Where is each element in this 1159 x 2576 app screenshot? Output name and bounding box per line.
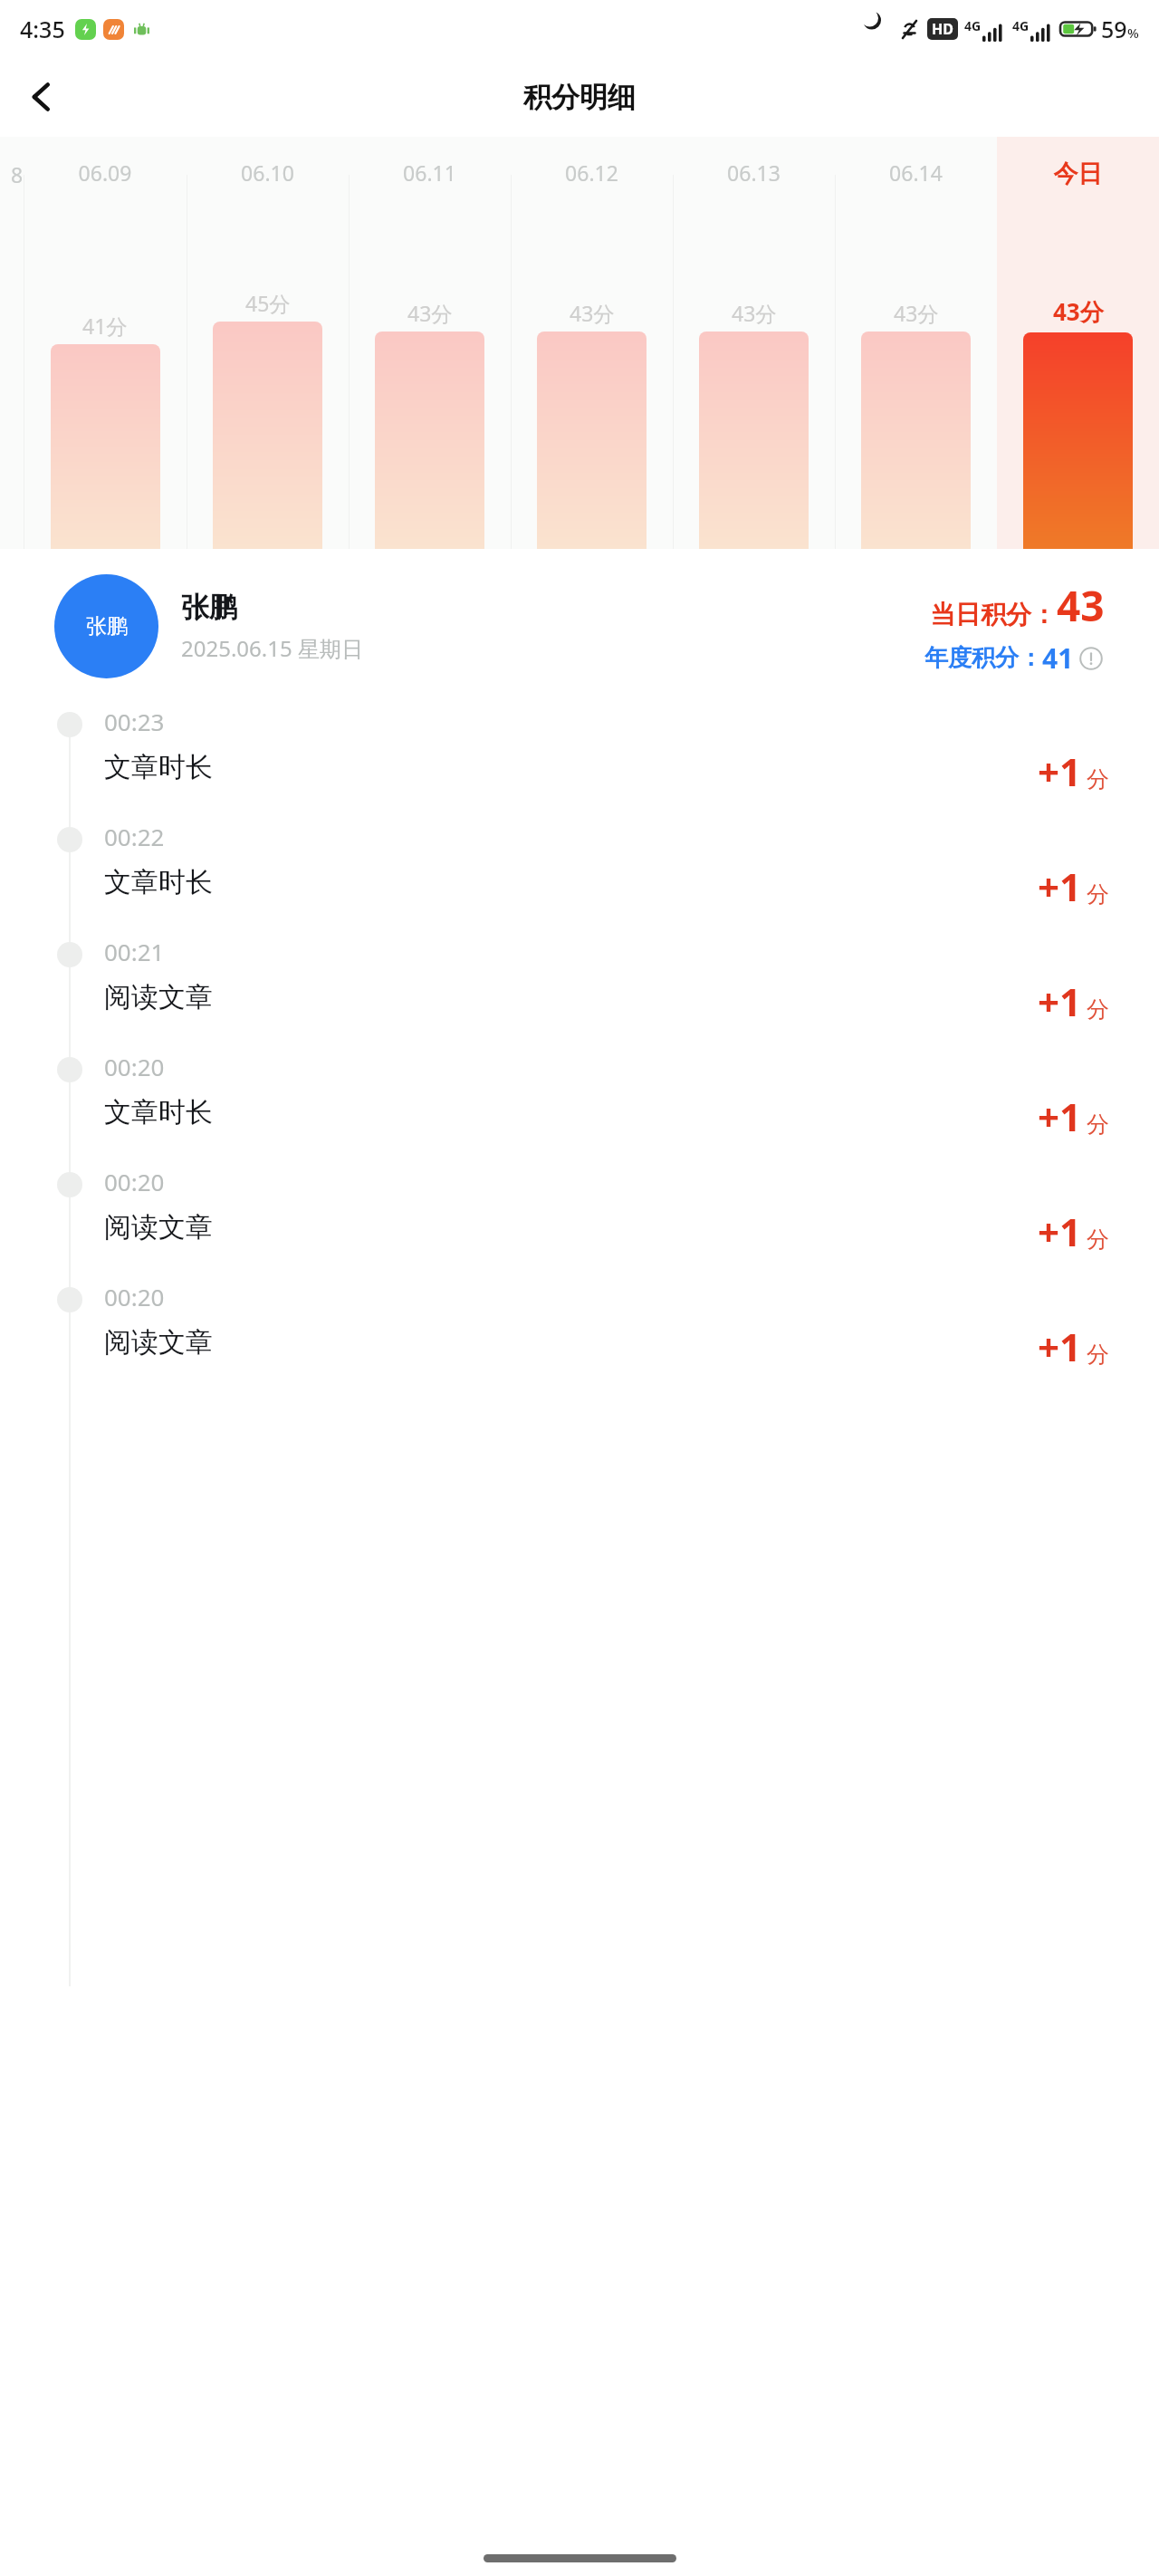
staticText: 8 (11, 160, 24, 188)
button[interactable]: 00:20 (0, 1049, 1159, 1164)
staticText: 06.09 (24, 159, 187, 187)
button[interactable]: 06.11 (349, 137, 511, 549)
staticText: % (1127, 24, 1139, 42)
staticText: +1 (1038, 1091, 1082, 1142)
staticText: 41 (1042, 639, 1074, 677)
staticText: 45分 (245, 289, 291, 317)
staticText: 59 (1101, 14, 1127, 44)
staticText: 2025.06.15 星期日 (181, 633, 363, 663)
staticText: 00:20 (104, 1281, 165, 1312)
staticText: 阅读文章 (104, 1325, 213, 1360)
staticText: 文章时长 (104, 1095, 213, 1129)
staticText: 张鹏 (181, 590, 237, 625)
staticText: 积分明细 (523, 80, 636, 115)
staticText: 年度积分： (924, 643, 1042, 673)
staticText: 43分 (570, 299, 615, 327)
staticText: 分 (1087, 995, 1109, 1024)
staticText: +1 (1038, 1206, 1082, 1257)
staticText: 06.13 (673, 159, 835, 187)
staticText: +1 (1038, 976, 1082, 1027)
staticText: 分 (1087, 1341, 1109, 1369)
staticText: +1 (1038, 745, 1082, 797)
staticText: 43分 (407, 299, 453, 327)
button[interactable]: 00:22 (0, 819, 1159, 934)
staticText: 分 (1087, 1226, 1109, 1254)
button[interactable]: 06.13 (673, 137, 835, 549)
button[interactable]: 00:20 (0, 1164, 1159, 1279)
button[interactable]: 00:20 (0, 1279, 1159, 1394)
button[interactable]: Info (1078, 645, 1105, 672)
staticText: 06.12 (511, 159, 673, 187)
staticText: 00:20 (104, 1166, 165, 1197)
button[interactable]: 06.09 (24, 137, 187, 549)
staticText: 当日积分： (930, 599, 1057, 630)
staticText: 文章时长 (104, 865, 213, 899)
staticText: 分 (1087, 1110, 1109, 1139)
staticText: 06.11 (349, 159, 511, 187)
staticText: +1 (1038, 1321, 1082, 1372)
staticText: 00:21 (104, 936, 165, 967)
staticText: 06.14 (835, 159, 997, 187)
staticText: 06.10 (187, 159, 349, 187)
staticText: 分 (1087, 765, 1109, 793)
staticText: 今日 (997, 159, 1159, 189)
staticText: 00:20 (104, 1051, 165, 1082)
staticText: 分 (1087, 880, 1109, 908)
staticText: 43分 (1053, 295, 1104, 328)
staticText: 00:23 (104, 706, 165, 737)
staticText: 00:22 (104, 821, 165, 852)
staticText: 4G (1012, 17, 1030, 34)
staticText: 4G (964, 17, 982, 34)
staticText: 阅读文章 (104, 1210, 213, 1245)
staticText: 阅读文章 (104, 980, 213, 1014)
button[interactable]: 00:21 (0, 934, 1159, 1049)
staticText: 43分 (894, 299, 939, 327)
button[interactable]: Back (9, 64, 74, 130)
staticText: 43 (1057, 577, 1105, 634)
staticText: 张鹏 (86, 613, 128, 639)
button[interactable]: 00:23 (0, 704, 1159, 819)
staticText: 文章时长 (104, 750, 213, 784)
button[interactable]: 06.10 (187, 137, 349, 549)
button[interactable]: 06.12 (511, 137, 673, 549)
staticText: 41分 (82, 312, 128, 340)
button[interactable]: 今日 (997, 137, 1159, 549)
staticText: 43分 (732, 299, 777, 327)
staticText: +1 (1038, 860, 1082, 912)
staticText: 4:35 (20, 14, 65, 44)
button[interactable]: 06.14 (835, 137, 997, 549)
staticText: HD (932, 19, 953, 39)
